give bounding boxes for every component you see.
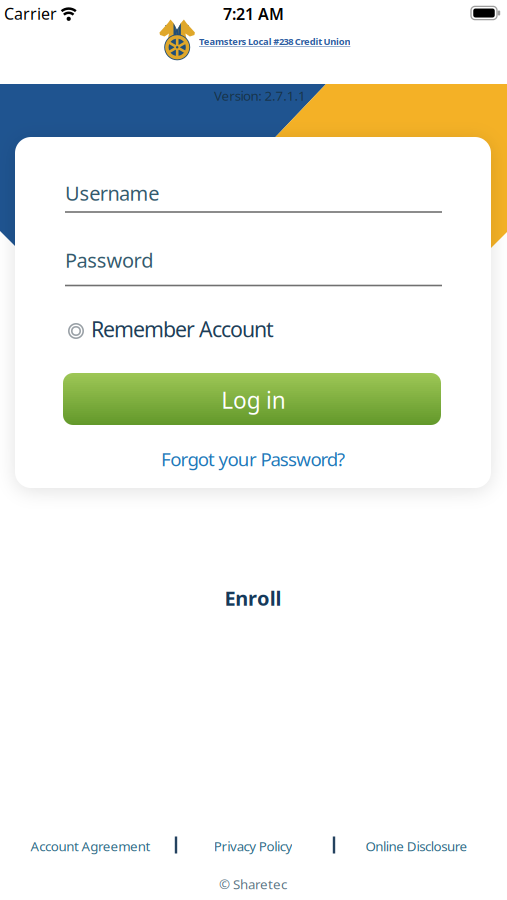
staticText: © Sharetec bbox=[219, 875, 287, 893]
staticText: Log in bbox=[221, 385, 286, 415]
staticText: Privacy Policy bbox=[214, 837, 292, 855]
staticText: Account Agreement bbox=[30, 837, 150, 855]
staticText: Teamsters Local #238 Credit Union bbox=[199, 35, 350, 48]
staticText: Carrier bbox=[4, 3, 57, 24]
staticText: Username bbox=[65, 180, 159, 206]
staticText: Online Disclosure bbox=[365, 837, 467, 855]
staticText: Version: 2.7.1.1 bbox=[214, 87, 306, 104]
staticText: Remember Account bbox=[91, 315, 274, 343]
staticText: Password bbox=[65, 247, 153, 273]
staticText: 7:21 AM bbox=[223, 3, 284, 24]
staticText: Enroll bbox=[224, 585, 281, 611]
staticText: Forgot your Password? bbox=[161, 447, 345, 471]
